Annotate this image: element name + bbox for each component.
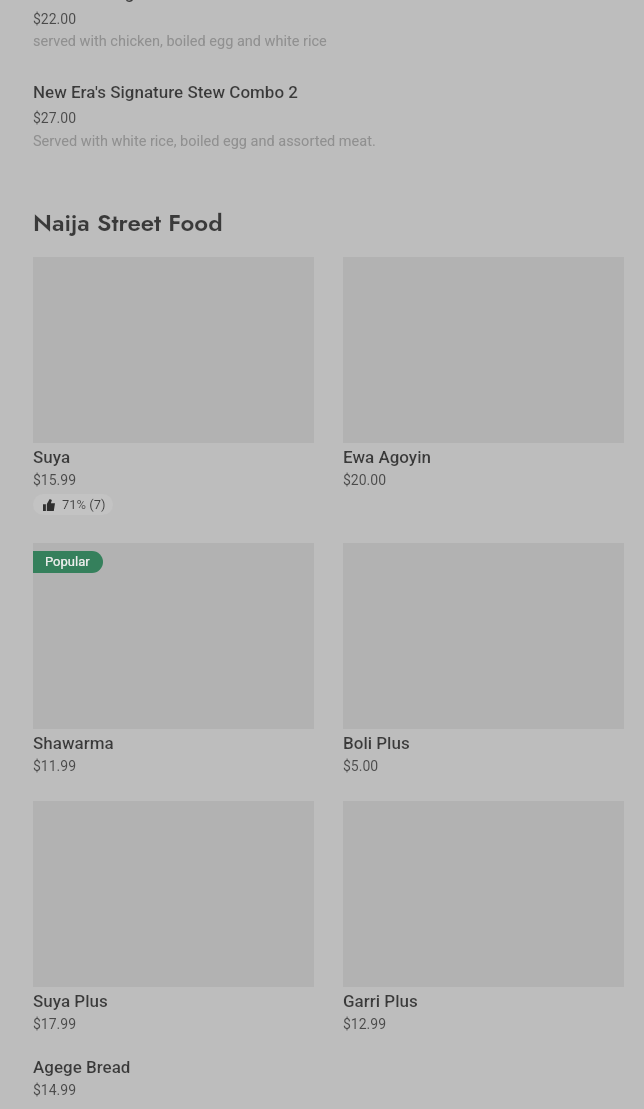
staticText: $12.99 [343, 1016, 387, 1032]
button[interactable]: Suya Plus [33, 801, 314, 1032]
button[interactable]: Boli Plus [343, 543, 624, 774]
staticText: $5.00 [343, 758, 379, 774]
staticText: $22.00 [33, 11, 77, 27]
staticText: New Era's Signature Stew Combo 2 [33, 82, 298, 102]
staticText: $20.00 [343, 472, 387, 488]
button[interactable]: Ewa Agoyin [343, 257, 624, 488]
staticText: $27.00 [33, 110, 77, 126]
staticText: served with chicken, boiled egg and whit… [33, 33, 327, 50]
button[interactable]: Popular [33, 543, 314, 774]
staticText: Suya [33, 447, 71, 467]
staticText: Shawarma [33, 733, 114, 753]
staticText: Served with white rice, boiled egg and a… [33, 133, 376, 150]
button[interactable]: Garri Plus [343, 801, 624, 1032]
staticText: 71% (7) [62, 497, 106, 512]
button[interactable]: 71% (7) [33, 494, 113, 515]
staticText: Suya Plus [33, 991, 108, 1011]
staticText: Boli Plus [343, 733, 410, 753]
button[interactable]: Agege Bread [33, 1053, 314, 1098]
staticText: Naija Street Food [33, 205, 223, 240]
button[interactable]: Popular [33, 551, 103, 573]
staticText: $11.99 [33, 758, 77, 774]
staticText: $15.99 [33, 472, 77, 488]
button[interactable]: Suya [33, 257, 314, 515]
staticText: Popular [45, 554, 90, 569]
staticText: Agege Bread [33, 1057, 131, 1077]
staticText: Ewa Agoyin [343, 447, 431, 467]
staticText: $14.99 [33, 1082, 77, 1098]
staticText: Garri Plus [343, 991, 418, 1011]
staticText: New Era's Signature Stew Combo 1 [33, 0, 298, 3]
staticText: $17.99 [33, 1016, 77, 1032]
